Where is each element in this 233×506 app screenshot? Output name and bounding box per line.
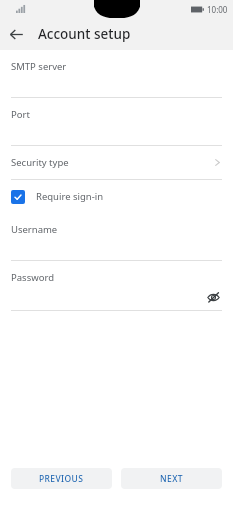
staticText: PREVIOUS — [39, 473, 84, 485]
button[interactable]: SMTP server — [0, 50, 233, 97]
staticText: SMTP server — [11, 60, 67, 73]
button[interactable]: Username — [0, 213, 233, 260]
button[interactable]: NEXT — [121, 468, 222, 489]
staticText: 10:00 — [207, 4, 228, 15]
staticText: Security type — [11, 156, 69, 169]
button[interactable]: Back — [0, 18, 32, 50]
staticText: Port — [11, 108, 30, 121]
staticText: Require sign-in — [36, 190, 104, 203]
button[interactable]: Port — [0, 98, 233, 145]
button[interactable]: Require sign-in — [0, 180, 233, 213]
button[interactable]: Show password — [204, 288, 222, 306]
staticText: Account setup — [38, 25, 131, 43]
button[interactable]: Password — [0, 261, 233, 310]
button[interactable]: PREVIOUS — [11, 468, 112, 489]
staticText: NEXT — [160, 473, 183, 485]
staticText: Password — [11, 271, 54, 284]
button[interactable]: Security type — [0, 146, 233, 179]
staticText: Username — [11, 223, 58, 236]
